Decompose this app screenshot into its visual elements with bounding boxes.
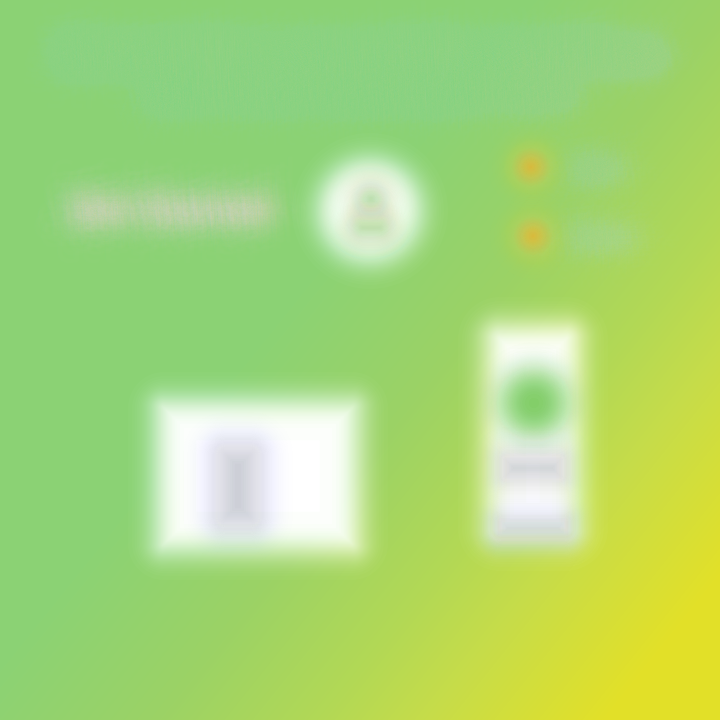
staticText: Quick setup in minutes: [82, 234, 296, 261]
staticText: Everything in one place: [24, 602, 277, 632]
staticText: Everything in one place: [0, 611, 246, 641]
staticText: Share: [578, 234, 647, 267]
staticText: with smart automation tools: [150, 53, 576, 96]
staticText: with smart automation tools: [138, 79, 564, 121]
staticText: Try it free today: [460, 640, 632, 670]
staticText: with smart automation tools: [136, 62, 562, 105]
staticText: Get Started: [100, 183, 302, 231]
staticText: Try it free today: [436, 617, 608, 647]
staticText: Get Started: [73, 171, 275, 219]
staticText: Try it free today: [468, 625, 640, 655]
staticText: Share: [578, 247, 647, 280]
staticText: Everything in one place: [0, 603, 236, 634]
staticText: Share: [594, 203, 663, 237]
staticText: Try it free today: [449, 637, 621, 667]
staticText: with smart automation tools: [167, 57, 593, 100]
staticText: Try it free today: [455, 624, 627, 654]
staticText: Everything in one place: [12, 625, 265, 655]
staticText: Share: [573, 208, 642, 242]
staticText: Share: [579, 218, 648, 251]
staticText: Get Started: [65, 169, 267, 217]
staticText: Streamline your daily workflow: [54, 35, 658, 88]
staticText: Get Started: [48, 188, 250, 235]
button[interactable]: App preview: [0, 0, 720, 720]
staticText: Share: [570, 232, 639, 266]
staticText: Everything in one place: [18, 598, 271, 628]
staticText: with smart automation tools: [154, 86, 580, 128]
staticText: Share: [550, 229, 619, 262]
staticText: Everything in one place: [32, 589, 285, 619]
staticText: Get Started: [93, 146, 295, 194]
staticText: Get Started: [88, 179, 290, 227]
staticText: Streamline your daily workflow: [44, 26, 648, 79]
staticText: Streamline your daily workflow: [36, 14, 640, 67]
staticText: with smart automation tools: [186, 77, 612, 120]
staticText: Streamline your daily workflow: [47, 20, 651, 73]
staticText: Share: [560, 212, 629, 246]
staticText: Get Started: [71, 187, 273, 235]
staticText: Sync: [580, 157, 635, 191]
button[interactable]: Account: [0, 0, 720, 720]
staticText: Everything in one place: [0, 599, 248, 629]
staticText: Share: [568, 207, 637, 240]
staticText: Sync: [575, 154, 630, 188]
staticText: with smart automation tools: [146, 68, 572, 111]
staticText: Everything in one place: [11, 601, 264, 631]
staticText: Sync: [563, 129, 618, 163]
staticText: Share: [560, 215, 629, 249]
staticText: Try it free today: [455, 613, 627, 643]
staticText: Share: [576, 213, 645, 247]
staticText: Get Started: [58, 194, 260, 242]
staticText: Everything in one place: [0, 595, 240, 625]
staticText: Try it free today: [452, 619, 624, 649]
staticText: Sync: [577, 153, 632, 187]
staticText: with smart automation tools: [156, 71, 582, 113]
staticText: Get Started: [62, 170, 264, 218]
staticText: Sync: [585, 137, 640, 170]
staticText: Everything in one place: [26, 617, 279, 647]
staticText: Streamline your daily workflow: [56, 23, 660, 76]
staticText: Get Started: [56, 176, 258, 224]
staticText: Get Started: [69, 181, 271, 229]
button[interactable]: Feature screenshot: [0, 0, 720, 720]
staticText: Sync: [567, 162, 622, 195]
staticText: Get Started: [44, 174, 246, 222]
staticText: Streamline your daily workflow: [64, 36, 668, 89]
staticText: with smart automation tools: [167, 63, 593, 105]
staticText: Try it free today: [478, 593, 650, 623]
staticText: Streamline your daily workflow: [54, 31, 658, 85]
staticText: Sync: [574, 149, 629, 182]
staticText: Get Started: [84, 185, 286, 233]
staticText: Sync: [565, 160, 620, 193]
staticText: Sync: [566, 140, 621, 174]
staticText: Everything in one place: [9, 608, 262, 638]
staticText: Sync: [585, 143, 640, 176]
